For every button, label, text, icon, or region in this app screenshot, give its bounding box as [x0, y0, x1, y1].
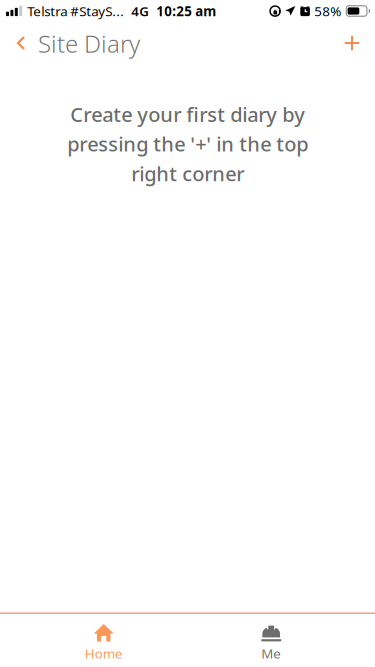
staticText: Telstra #StayS... — [27, 2, 124, 20]
button[interactable]: Home — [55, 614, 153, 667]
button[interactable]: Add diary — [332, 22, 372, 64]
button[interactable]: Back — [7, 22, 35, 64]
staticText: Home — [85, 644, 123, 662]
staticText: 58% — [314, 2, 341, 20]
button[interactable]: Me — [222, 614, 320, 667]
staticText: 4G — [131, 2, 149, 20]
staticText: Create your first diary by pressing the … — [67, 101, 308, 187]
staticText: Me — [261, 644, 281, 662]
staticText: 10:25 am — [156, 2, 216, 20]
staticText: Site Diary — [38, 28, 140, 59]
